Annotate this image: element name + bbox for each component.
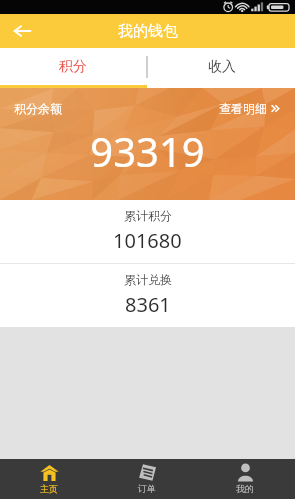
staticText: 累计兑换 — [124, 272, 172, 287]
button[interactable]: 主页 — [0, 459, 98, 499]
button[interactable]: 积分 — [0, 48, 146, 85]
staticText: 订单 — [138, 483, 156, 494]
button[interactable]: 收入 — [148, 48, 295, 85]
button[interactable]: 订单 — [98, 459, 196, 499]
staticText: 查看明细 — [219, 101, 267, 116]
staticText: 8361 — [125, 291, 171, 318]
staticText: 主页 — [40, 483, 58, 494]
staticText: 93319 — [90, 124, 205, 178]
button[interactable]: 我的 — [196, 459, 294, 499]
staticText: 我的钱包 — [118, 22, 178, 41]
staticText: 101680 — [113, 227, 182, 254]
staticText: 积分余额 — [14, 101, 62, 116]
staticText: 收入 — [208, 58, 236, 76]
button[interactable]: Back — [0, 14, 44, 48]
staticText: 积分 — [59, 58, 87, 76]
staticText: 累计积分 — [124, 208, 172, 223]
button[interactable]: 查看明细 — [219, 101, 281, 116]
staticText: 我的 — [236, 483, 254, 494]
